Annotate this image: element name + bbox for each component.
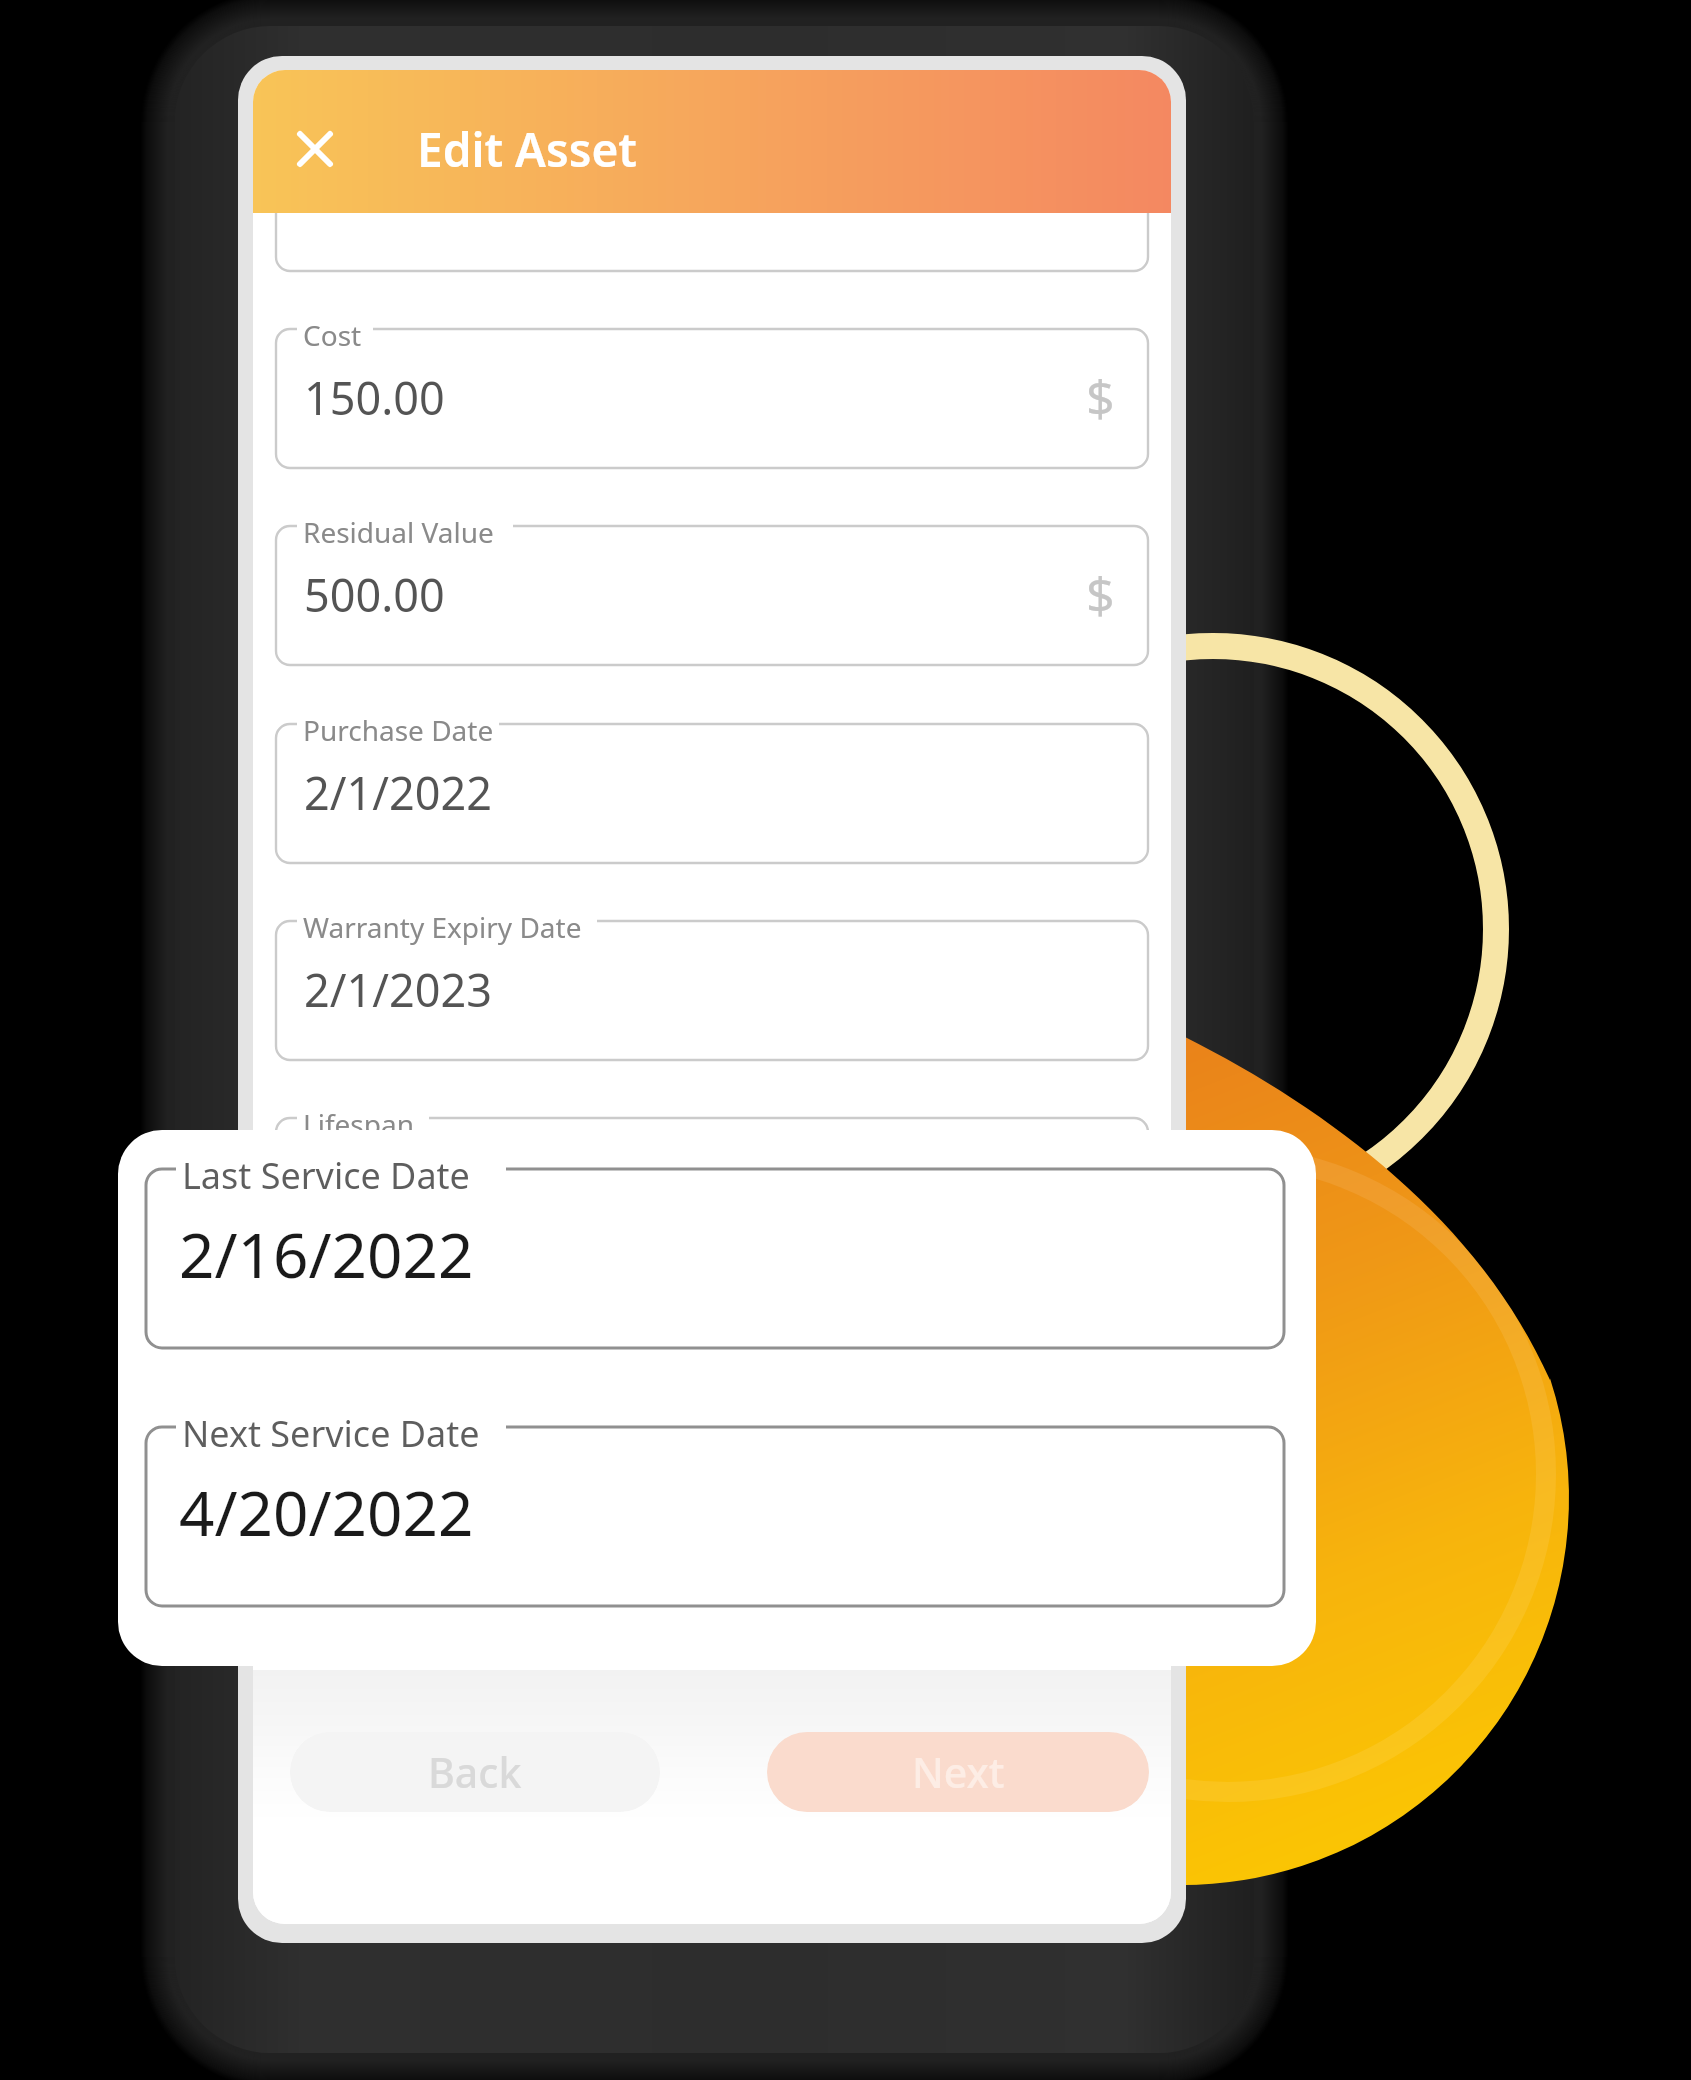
staticText: Warranty Expiry Date xyxy=(303,908,582,946)
button[interactable]: Warranty Expiry Date xyxy=(276,921,1148,1060)
staticText: 150.00 xyxy=(304,367,445,428)
button[interactable]: Residual Value xyxy=(276,526,1148,665)
button[interactable]: Purchase Date xyxy=(276,724,1148,863)
staticText: 4/20/2022 xyxy=(179,1470,474,1554)
staticText: Location xyxy=(303,1499,416,1537)
button[interactable]: Serial No. xyxy=(276,132,1148,271)
button[interactable]: Next Service Date xyxy=(146,1427,1284,1606)
button[interactable]: Next xyxy=(767,1732,1149,1812)
staticText: 2/16/2022 xyxy=(179,1212,474,1296)
staticText: Serial No. xyxy=(303,119,429,157)
staticText: Cost xyxy=(303,316,362,354)
button[interactable]: Cost xyxy=(276,329,1148,468)
staticText: Lifespan xyxy=(303,1105,414,1143)
staticText: 2/1/2022 xyxy=(304,762,492,823)
staticText: Last Service Date xyxy=(182,1151,470,1200)
staticText: 2/1/2023 xyxy=(304,959,492,1020)
staticText: Back xyxy=(428,1744,522,1800)
button[interactable]: Assigned To xyxy=(276,1315,1148,1454)
staticText: 500.00 xyxy=(304,564,445,625)
button[interactable]: Back xyxy=(290,1732,660,1812)
staticText: $ xyxy=(1086,363,1115,431)
staticText: Next Service Date xyxy=(182,1409,480,1458)
staticText: $ xyxy=(1086,560,1115,628)
button[interactable]: Location xyxy=(276,1512,1148,1651)
button[interactable]: Last Service Date xyxy=(146,1169,1284,1348)
staticText: Edit Asset xyxy=(417,118,637,181)
staticText: Next xyxy=(912,1744,1005,1800)
button[interactable]: Close xyxy=(293,127,337,171)
staticText: Purchase Date xyxy=(303,711,494,749)
staticText: Residual Value xyxy=(303,513,494,551)
button[interactable]: Lifespan xyxy=(276,1118,1148,1257)
